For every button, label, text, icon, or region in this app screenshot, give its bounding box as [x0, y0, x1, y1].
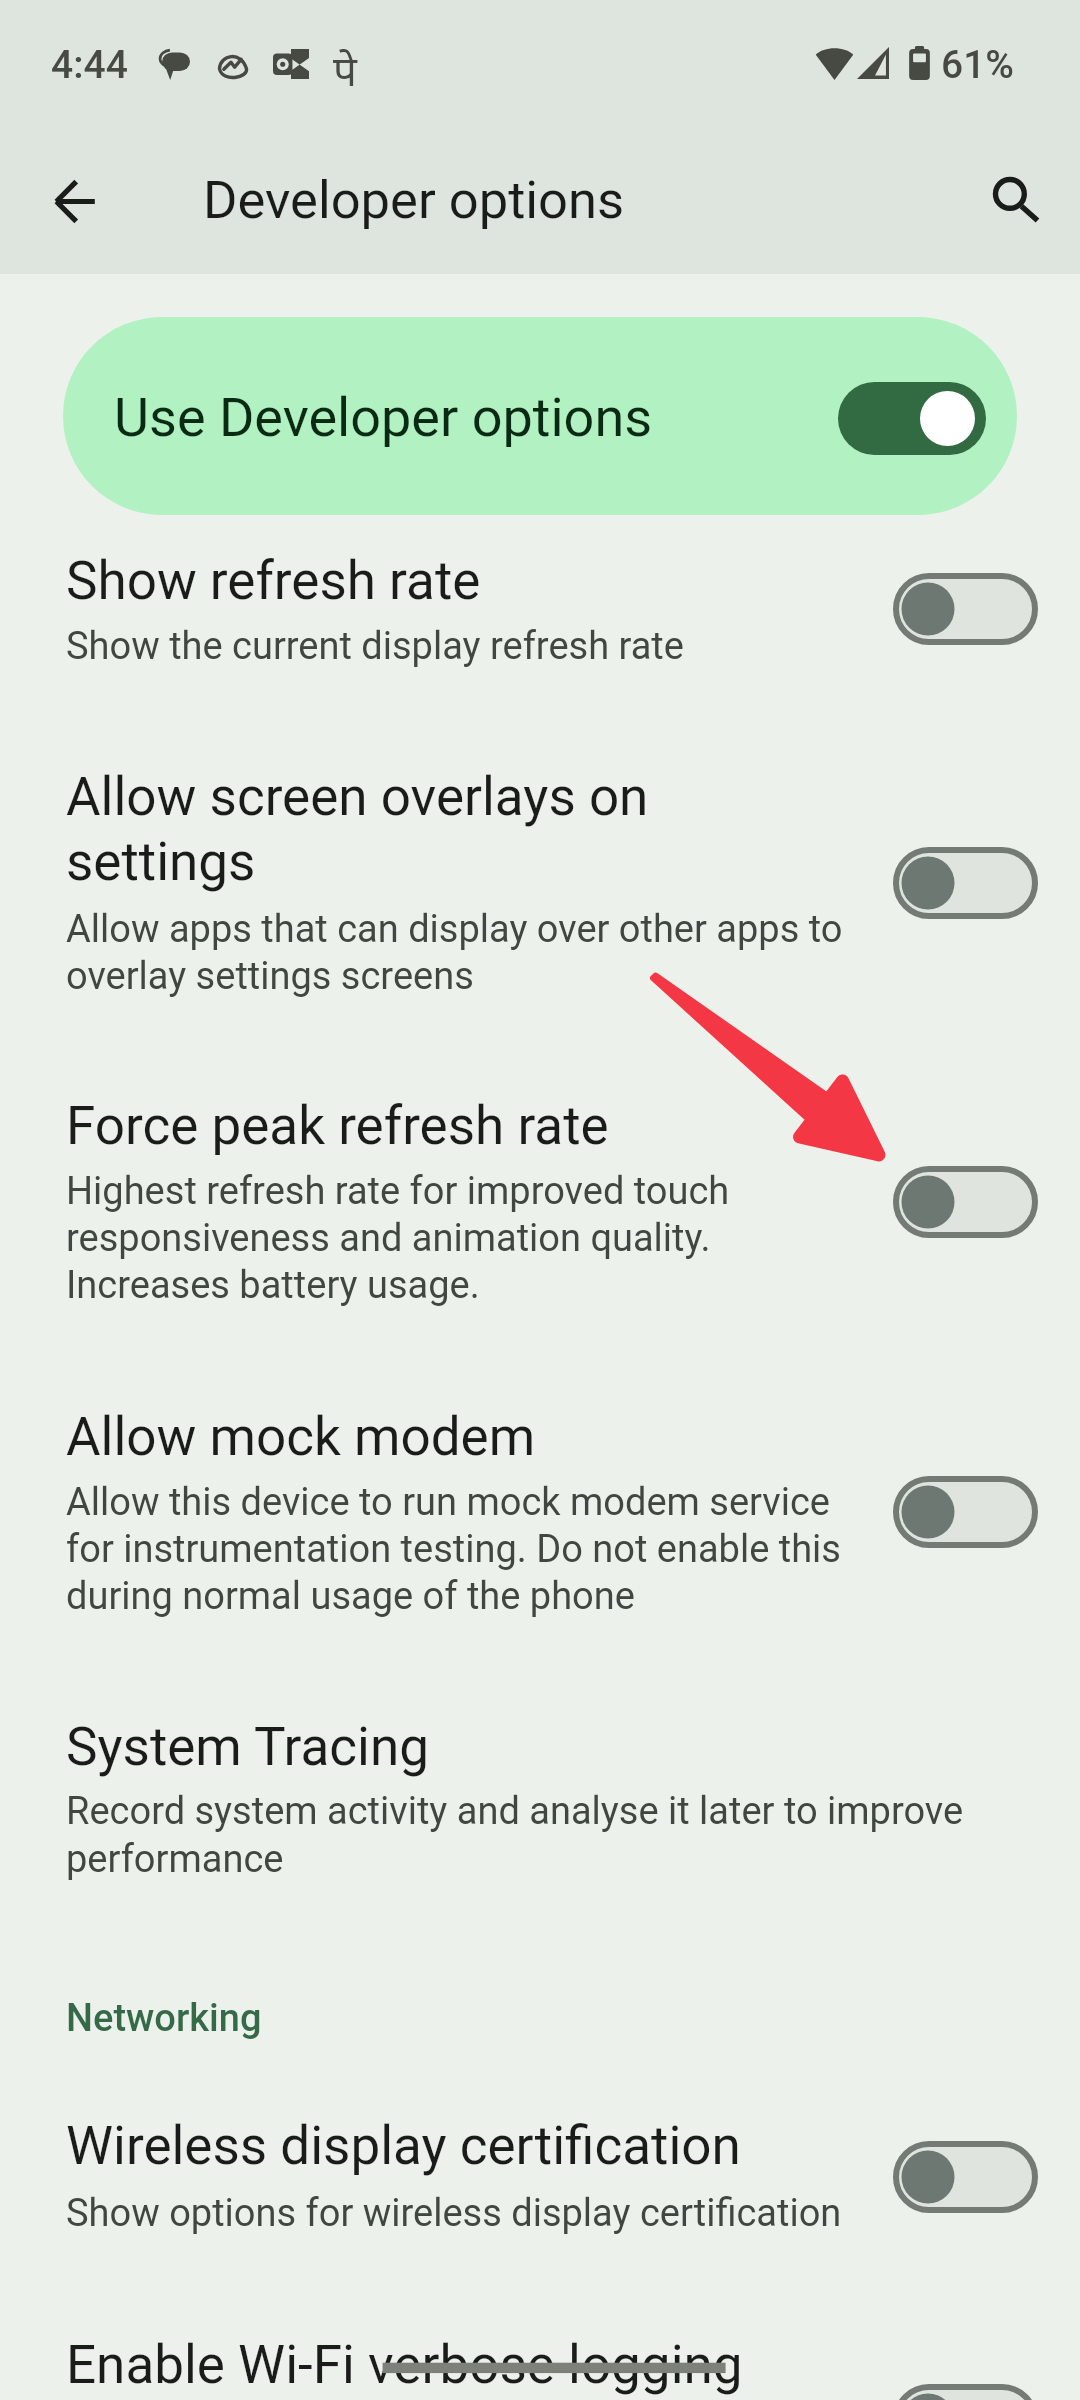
staticText: Use Developer options: [114, 386, 1080, 449]
button[interactable]: Wireless display certification, off: [879, 2127, 1052, 2227]
button[interactable]: [0, 2330, 1080, 2400]
staticText: पे: [333, 41, 1080, 98]
staticText: Enable Wi-Fi verbose logging: [66, 2334, 1066, 2396]
staticText: Allow apps that can display over other a…: [66, 907, 1066, 998]
staticText: Highest refresh rate for improved touch …: [66, 1169, 1066, 1308]
button[interactable]: [0, 540, 1080, 700]
button[interactable]: Enable Wi-Fi verbose logging, off: [879, 2370, 1052, 2400]
button[interactable]: Force peak refresh rate, off: [879, 1152, 1052, 1252]
button[interactable]: Back: [30, 157, 118, 245]
button[interactable]: [0, 760, 1080, 1010]
staticText: System Tracing: [66, 1716, 1066, 1778]
button[interactable]: Allow screen overlays on settings, off: [879, 833, 1052, 933]
button[interactable]: Show refresh rate, off: [879, 559, 1052, 659]
staticText: Allow this device to run mock modem serv…: [66, 1480, 1066, 1619]
staticText: Networking: [66, 1996, 1066, 2041]
staticText: Show options for wireless display certif…: [66, 2191, 1066, 2236]
button[interactable]: Toggle, on: [824, 368, 1000, 469]
staticText: Developer options: [203, 169, 1080, 231]
button[interactable]: [0, 1080, 1080, 1320]
button[interactable]: [0, 1390, 1080, 1620]
staticText: 4:44: [51, 42, 1051, 88]
button[interactable]: Search: [971, 155, 1059, 243]
button[interactable]: [0, 1700, 1080, 1900]
staticText: Record system activity and analyse it la…: [66, 1789, 1066, 1881]
staticText: Allow mock modem: [66, 1406, 1066, 1468]
staticText: Show refresh rate: [66, 550, 1066, 612]
staticText: Wireless display certification: [66, 2115, 1066, 2177]
button[interactable]: [0, 2110, 1080, 2250]
button[interactable]: [63, 317, 1017, 515]
staticText: Show the current display refresh rate: [66, 624, 1066, 669]
button[interactable]: Allow mock modem, off: [879, 1462, 1052, 1562]
staticText: Force peak refresh rate: [66, 1095, 1066, 1157]
staticText: 61%: [941, 42, 1080, 88]
staticText: Allow screen overlays on settings: [66, 766, 1066, 893]
